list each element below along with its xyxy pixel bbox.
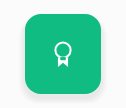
button[interactable]: Award badge bbox=[25, 14, 101, 94]
